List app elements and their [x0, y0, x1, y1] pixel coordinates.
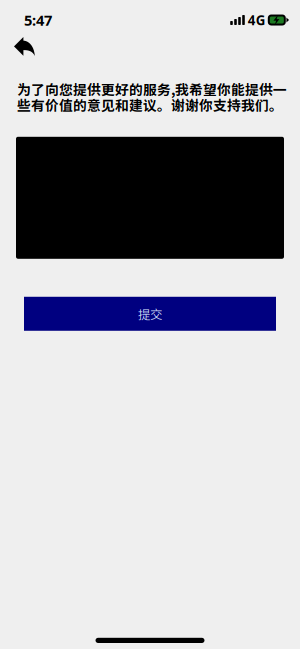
staticText: 提交	[138, 305, 162, 323]
staticText: 为了向您提供更好的服务,我希望你能提供一 些有价值的意见和建议。谢谢你支持我们。	[17, 79, 287, 115]
staticText: 5:47	[24, 10, 52, 30]
staticText: 4G	[248, 11, 266, 29]
button[interactable]: 提交	[24, 297, 276, 331]
button[interactable]: Back	[0, 32, 45, 61]
